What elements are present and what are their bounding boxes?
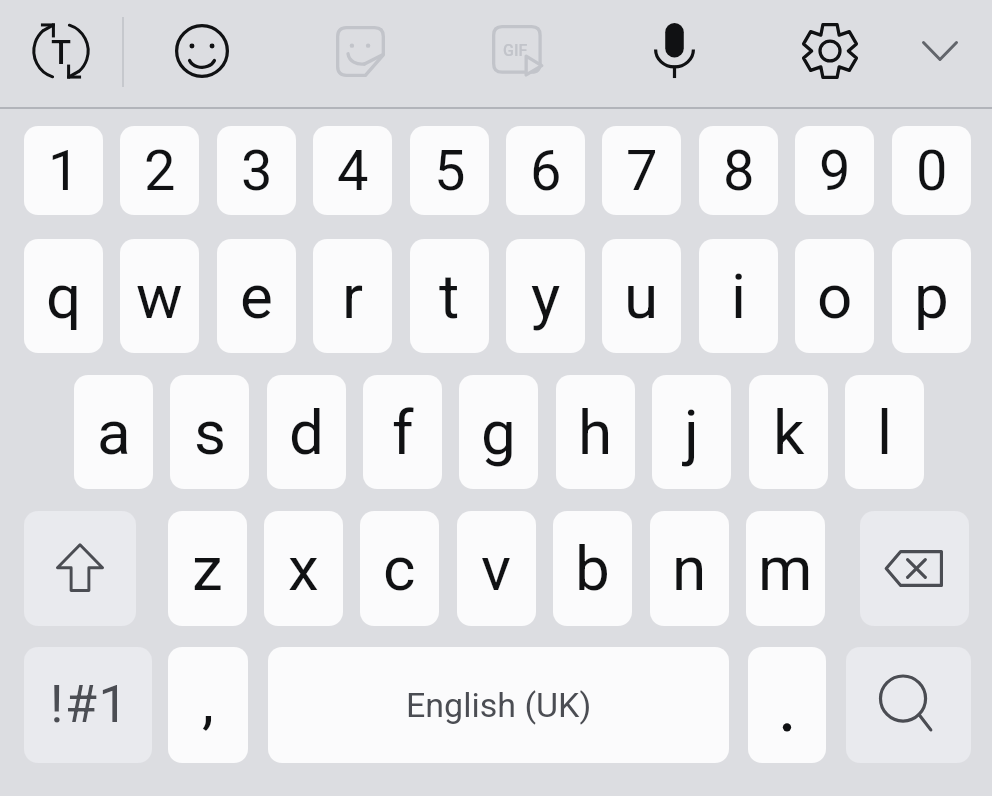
other: Search [878,676,933,731]
staticText: 8 [723,138,755,204]
staticText: English (UK) [406,685,592,725]
staticText: p [914,260,949,333]
staticText: T [51,33,72,72]
button[interactable]: d [267,375,346,489]
button[interactable]: GIF [473,6,561,94]
staticText: q [46,260,82,333]
button[interactable]: f [363,375,442,489]
button[interactable]: v [457,511,536,626]
staticText: n [672,532,707,605]
button[interactable] [748,647,826,763]
button[interactable]: k [749,375,828,489]
button[interactable]: 6 [506,126,585,215]
staticText: o [817,260,853,333]
staticText: 5 [434,138,466,204]
button[interactable]: b [553,511,632,626]
button[interactable]: w [120,239,199,353]
button[interactable]: o [795,239,874,353]
button[interactable]: a [74,375,153,489]
staticText: g [481,396,516,469]
staticText: i [731,260,747,333]
staticText: w [136,260,183,333]
button[interactable]: !#1 [24,647,152,763]
staticText: f [392,396,414,469]
button[interactable]: 5 [410,126,489,215]
button[interactable]: p [892,239,971,353]
button[interactable]: e [217,239,296,353]
button[interactable]: s [170,375,249,489]
button[interactable]: i [699,239,778,353]
staticText: s [194,396,226,469]
staticText: 0 [916,138,948,204]
button[interactable]: y [506,239,585,353]
staticText: m [758,532,813,605]
staticText: c [383,532,416,605]
staticText: z [192,532,223,605]
button[interactable]: , [168,647,248,763]
button[interactable]: Settings [786,7,874,95]
button[interactable]: Stickers [316,7,404,95]
staticText: r [342,260,364,333]
staticText: , [202,666,214,736]
staticText: 6 [530,138,562,204]
button[interactable]: 8 [699,126,778,215]
staticText: a [97,396,131,469]
button[interactable]: Emoji [158,7,246,95]
button[interactable]: 4 [313,126,392,215]
button[interactable]: 0 [892,126,971,215]
button[interactable]: r [313,239,392,353]
button[interactable]: c [360,511,439,626]
staticText: x [288,532,319,605]
staticText: l [877,396,893,469]
button[interactable]: Voice input [630,7,718,95]
button[interactable]: 3 [217,126,296,215]
button[interactable]: English (UK) [268,647,729,763]
button[interactable]: Search [846,647,971,763]
staticText: 4 [337,138,369,204]
button[interactable]: Shift [24,511,136,626]
button[interactable]: 1 [24,126,103,215]
staticText: !#1 [50,674,130,735]
staticText: j [684,396,699,469]
staticText: t [439,260,460,333]
button[interactable]: l [845,375,924,489]
staticText: 7 [626,138,658,204]
button[interactable]: m [746,511,825,626]
button[interactable]: 9 [795,126,874,215]
button[interactable]: t [410,239,489,353]
staticText: k [773,396,805,469]
staticText: h [578,396,613,469]
button[interactable]: g [459,375,538,489]
button[interactable]: z [168,511,247,626]
staticText: e [240,260,273,333]
staticText: d [289,396,324,469]
button[interactable]: h [556,375,635,489]
button[interactable]: q [24,239,103,353]
button[interactable]: j [652,375,731,489]
staticText: 2 [144,138,176,204]
button[interactable]: x [264,511,343,626]
staticText: 9 [819,138,851,204]
button[interactable]: Translate [17,7,105,95]
button[interactable]: 7 [602,126,681,215]
staticText: 1 [48,138,80,204]
staticText: 3 [241,138,273,204]
other: Shift [56,543,104,592]
button[interactable]: Backspace [860,511,969,626]
button[interactable]: 2 [120,126,199,215]
staticText: b [575,532,610,605]
staticText: GIF [503,41,528,60]
other: Backspace [884,550,943,587]
button[interactable]: Hide keyboard [896,7,984,95]
staticText: y [531,260,561,333]
staticText: v [481,532,512,605]
button[interactable]: u [602,239,681,353]
staticText: u [624,260,659,333]
button[interactable]: n [650,511,729,626]
